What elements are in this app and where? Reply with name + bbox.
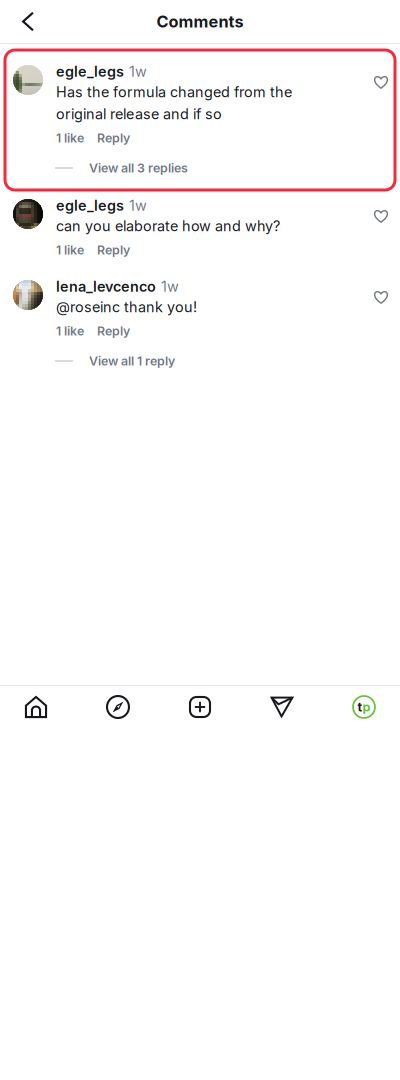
button[interactable]: Home <box>0 686 77 728</box>
staticText: Comments <box>156 12 243 31</box>
button[interactable]: Back <box>11 4 45 38</box>
staticText: can you elaborate how and why? <box>56 217 280 235</box>
button[interactable]: Messages <box>241 686 323 728</box>
staticText: 1 like <box>56 323 84 338</box>
staticText: egle_legs <box>56 63 124 80</box>
staticText: 1w <box>129 63 147 80</box>
staticText: View all 3 replies <box>89 160 188 175</box>
button[interactable]: Reply <box>97 130 130 145</box>
button[interactable]: Explore <box>77 686 159 728</box>
staticText: lena_levcenco <box>56 278 156 295</box>
button[interactable]: Like <box>372 277 390 317</box>
staticText: 1 like <box>56 242 84 257</box>
staticText: @roseinc thank you! <box>56 298 197 316</box>
staticText: 1w <box>161 278 179 295</box>
staticText: original release and if so <box>56 105 222 123</box>
staticText: Reply <box>97 242 130 257</box>
button[interactable]: New post <box>159 686 241 728</box>
staticText: 1 like <box>56 130 84 145</box>
button[interactable]: Like <box>372 62 390 102</box>
button[interactable]: View all 3 replies <box>55 151 390 185</box>
button[interactable]: Like <box>372 196 390 236</box>
staticText: Has the formula changed from the <box>56 83 292 101</box>
button[interactable]: Reply <box>97 242 130 257</box>
staticText: Reply <box>97 130 130 145</box>
button[interactable]: Reply <box>97 323 130 338</box>
button[interactable]: Profile <box>323 686 400 728</box>
staticText: 1w <box>129 197 147 214</box>
staticText: p <box>362 699 370 715</box>
staticText: t <box>357 699 362 715</box>
staticText: Reply <box>97 323 130 338</box>
staticText: View all 1 reply <box>89 353 175 368</box>
staticText: egle_legs <box>56 197 124 214</box>
button[interactable]: View all 1 reply <box>55 344 390 378</box>
